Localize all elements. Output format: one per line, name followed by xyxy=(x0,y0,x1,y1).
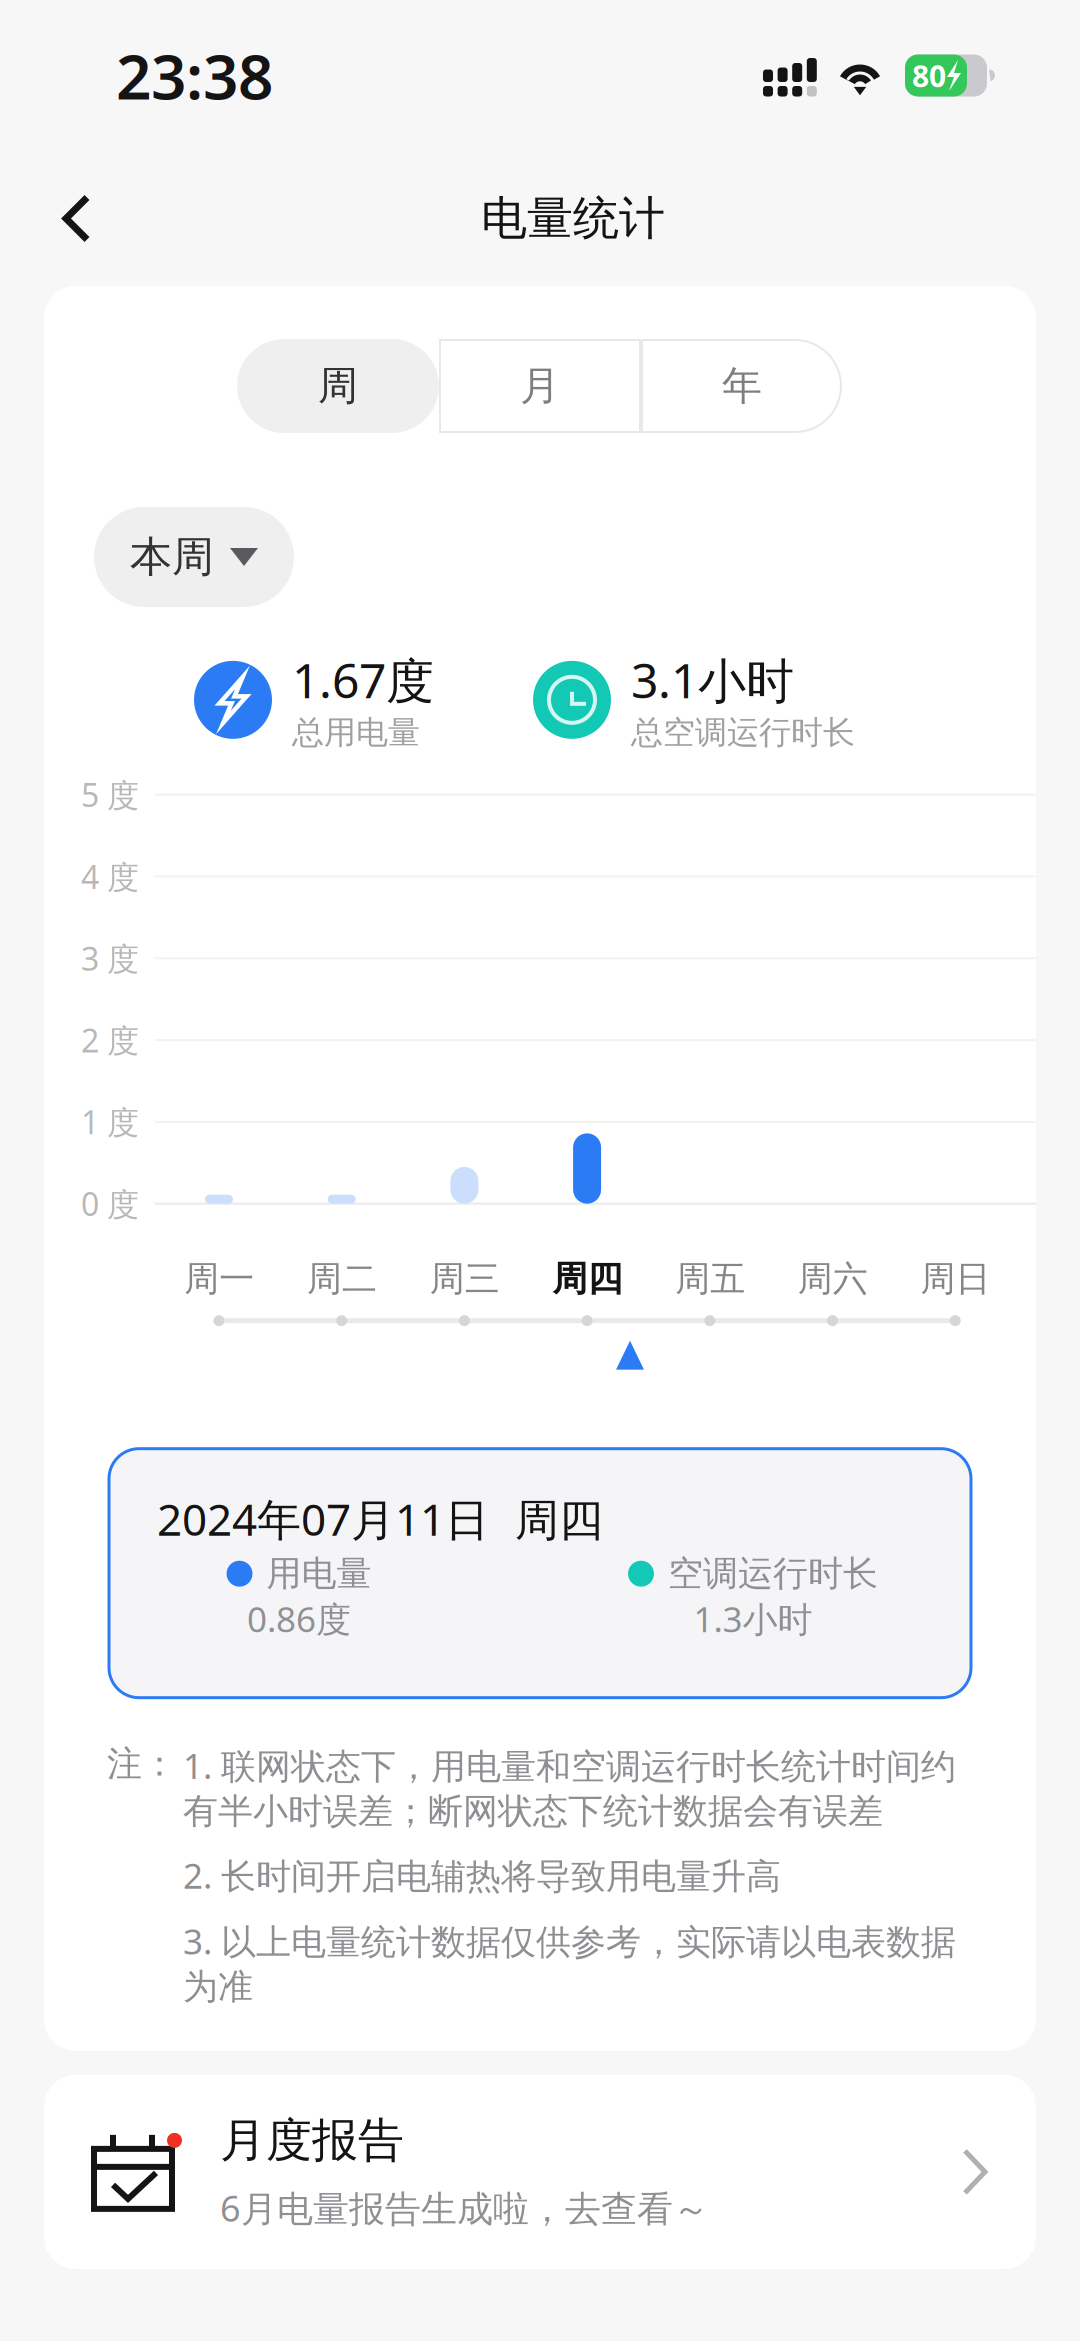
staticText: 周五 xyxy=(675,1257,745,1301)
staticText: 总空调运行时长 xyxy=(631,712,855,753)
staticText: 电量统计 xyxy=(481,189,665,247)
staticText: 周一 xyxy=(184,1257,254,1301)
button[interactable]: 年 xyxy=(641,339,843,433)
staticText: 用电量 xyxy=(266,1552,371,1596)
staticText: 3.1小时 xyxy=(631,647,794,712)
staticText: 1.67度 xyxy=(292,647,434,712)
staticText: 周四 xyxy=(552,1257,622,1301)
staticText: 空调运行时长 xyxy=(668,1552,878,1596)
staticText: 4 度 xyxy=(81,855,139,898)
staticText: 1 度 xyxy=(81,1100,139,1144)
staticText: 月 xyxy=(520,361,560,411)
staticText: 周三 xyxy=(430,1257,500,1301)
staticText: 注： xyxy=(107,1742,177,1786)
staticText: 0 度 xyxy=(81,1182,139,1225)
staticText: 周六 xyxy=(798,1257,868,1301)
staticText: 80 xyxy=(912,55,946,96)
staticText: 2 度 xyxy=(81,1018,139,1062)
button[interactable]: 返回 xyxy=(0,168,131,268)
staticText: 月度报告 xyxy=(220,2111,404,2169)
staticText: 2. 长时间开启电辅热将导致用电量升高 xyxy=(183,1851,781,1899)
staticText: 23:38 xyxy=(116,33,273,118)
staticText: 6月电量报告生成啦，去查看～ xyxy=(220,2183,709,2232)
staticText: 本周 xyxy=(130,530,214,583)
button[interactable]: 月 xyxy=(439,339,641,433)
staticText: 周日 xyxy=(921,1257,991,1301)
staticText: 1. 联网状态下，用电量和空调运行时长统计时间约有半小时误差；断网状态下统计数据… xyxy=(183,1742,956,1833)
staticText: 0.86度 xyxy=(247,1595,351,1643)
button[interactable]: 本周 xyxy=(94,507,294,607)
staticText: 周 xyxy=(318,361,358,411)
button[interactable]: 周 xyxy=(237,339,439,433)
staticText: 3 度 xyxy=(81,936,139,980)
staticText: 3. 以上电量统计数据仅供参考，实际请以电表数据为准 xyxy=(183,1917,956,2009)
button[interactable]: 月度报告 xyxy=(44,2075,1036,2269)
staticText: 5 度 xyxy=(81,773,139,816)
staticText: 1.3小时 xyxy=(693,1595,812,1643)
staticText: 2024年07月11日 周四 xyxy=(157,1489,603,1549)
staticText: 年 xyxy=(722,361,762,411)
staticText: 周二 xyxy=(307,1257,377,1301)
staticText: 总用电量 xyxy=(292,712,420,753)
